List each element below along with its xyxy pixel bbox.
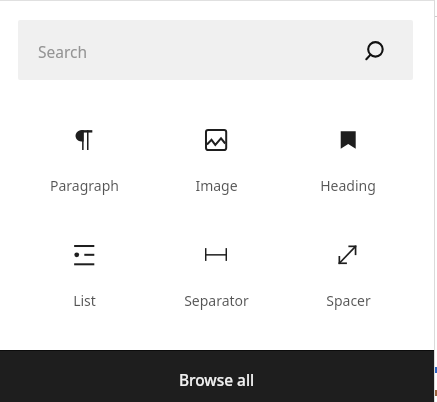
button[interactable]: Separator	[150, 213, 282, 308]
staticText: Heading	[320, 176, 376, 195]
staticText: Spacer	[326, 291, 371, 310]
button[interactable]: Heading	[282, 98, 414, 193]
button[interactable]: Paragraph	[18, 98, 150, 193]
staticText: Browse all	[179, 370, 255, 391]
staticText: Search	[38, 41, 88, 62]
button[interactable]: Spacer	[282, 213, 414, 308]
button[interactable]: Image	[150, 98, 282, 193]
staticText: List	[73, 291, 96, 310]
other: Search	[364, 41, 386, 63]
button[interactable]: Browse all	[0, 350, 434, 402]
staticText: Paragraph	[50, 176, 119, 195]
button[interactable]: Search	[18, 20, 413, 80]
staticText: Separator	[184, 291, 249, 310]
staticText: Image	[195, 176, 238, 195]
button[interactable]: List	[18, 213, 150, 308]
